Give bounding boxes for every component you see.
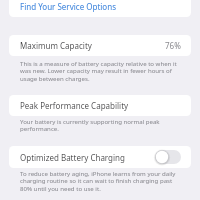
staticText: Your battery is currently supporting nor…: [20, 117, 180, 133]
button[interactable]: Optimized Battery Charging toggle, off: [155, 150, 181, 164]
staticText: Optimized Battery Charging: [20, 152, 125, 163]
button[interactable]: Peak Performance Capability: [9, 95, 191, 116]
staticText: Maximum Capacity: [20, 40, 92, 51]
staticText: Peak Performance Capability: [20, 100, 129, 111]
staticText: 76%: [165, 40, 181, 51]
staticText: To reduce battery aging, iPhone learns f…: [20, 169, 180, 193]
button[interactable]: Maximum Capacity: [9, 35, 191, 56]
button[interactable]: Find Your Service Options: [9, 0, 191, 17]
staticText: This is a measure of battery capacity re…: [20, 59, 180, 83]
staticText: Find Your Service Options: [20, 1, 116, 12]
button[interactable]: Optimized Battery Charging: [9, 146, 191, 168]
